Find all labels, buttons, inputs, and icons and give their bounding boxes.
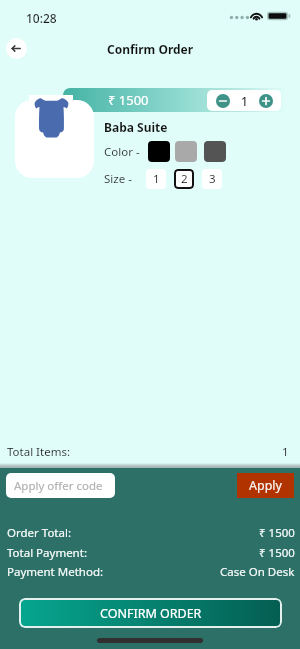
staticText: 1 bbox=[153, 171, 160, 187]
staticText: 3 bbox=[209, 171, 216, 187]
button[interactable]: Colour option bbox=[148, 141, 170, 162]
staticText: Payment Method: bbox=[7, 564, 104, 580]
staticText: Color - bbox=[104, 144, 140, 160]
button[interactable]: Back bbox=[6, 38, 27, 59]
button[interactable]: 1 bbox=[146, 169, 166, 189]
staticText: Total Payment: bbox=[7, 545, 87, 561]
staticText: Case On Desk bbox=[220, 564, 295, 580]
button[interactable]: Apply bbox=[237, 473, 294, 498]
staticText: Size - bbox=[104, 171, 132, 187]
staticText: 10:28 bbox=[26, 10, 57, 26]
button[interactable]: Colour option bbox=[204, 141, 226, 162]
button[interactable]: Increase quantity bbox=[259, 94, 273, 108]
button[interactable]: Decrease quantity bbox=[216, 94, 230, 108]
staticText: ₹ 1500 bbox=[259, 545, 295, 561]
staticText: Confirm Order bbox=[107, 41, 194, 57]
staticText: 2 bbox=[181, 171, 188, 187]
button[interactable]: CONFIRM ORDER bbox=[19, 598, 282, 628]
staticText: CONFIRM ORDER bbox=[100, 605, 202, 622]
staticText: Apply bbox=[249, 477, 282, 494]
button[interactable]: 3 bbox=[202, 169, 222, 189]
staticText: 1 bbox=[241, 93, 248, 109]
button[interactable]: Product image bbox=[15, 100, 94, 178]
staticText: Apply offer code bbox=[14, 478, 103, 494]
staticText: Total Items: bbox=[7, 444, 70, 460]
button[interactable]: 2 bbox=[174, 169, 194, 189]
staticText: ₹ 1500 bbox=[259, 525, 295, 541]
staticText: Order Total: bbox=[7, 525, 71, 541]
staticText: 1 bbox=[282, 444, 289, 460]
staticText: ₹ 1500 bbox=[108, 91, 149, 109]
button[interactable]: Colour option bbox=[175, 141, 197, 162]
staticText: Baba Suite bbox=[104, 119, 168, 135]
button[interactable]: Apply offer code bbox=[6, 473, 115, 498]
